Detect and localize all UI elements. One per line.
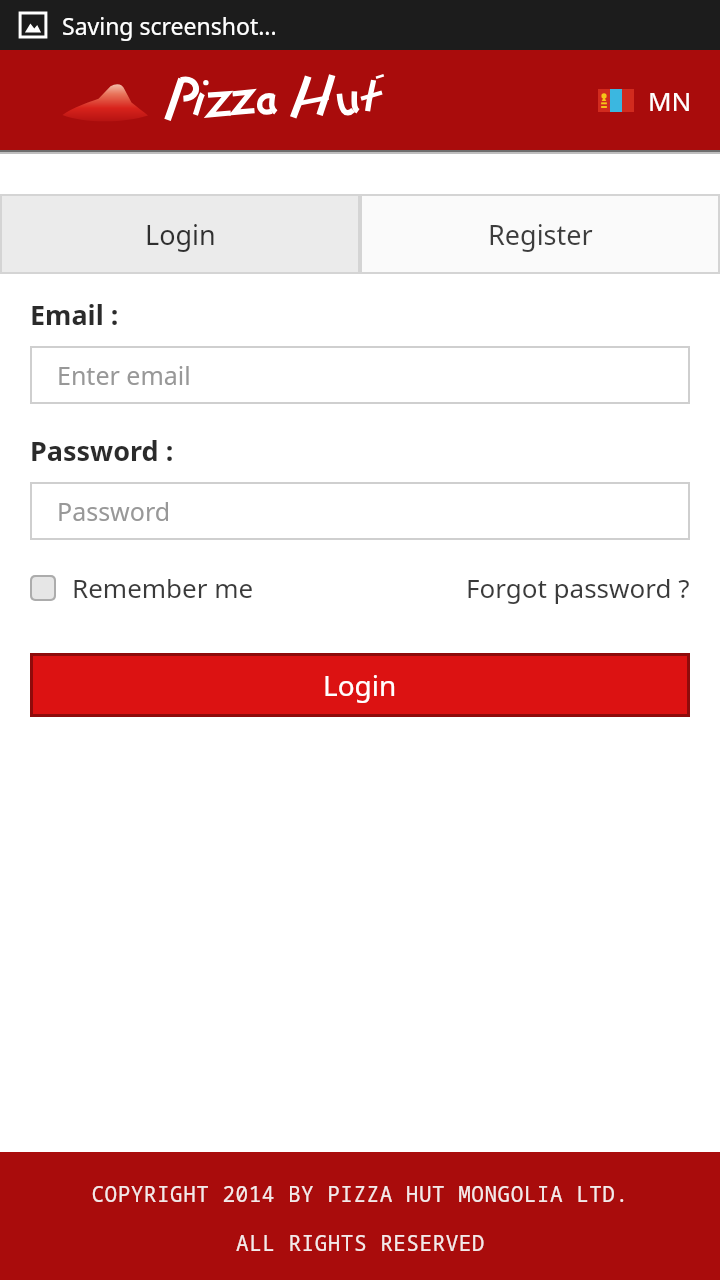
button[interactable]: Login — [33, 656, 687, 714]
button[interactable]: Login — [2, 196, 358, 272]
button[interactable]: Enter email — [32, 348, 688, 402]
staticText: Register — [488, 216, 593, 253]
staticText: MN — [648, 83, 692, 118]
staticText: Login — [145, 216, 216, 253]
staticText: Saving screenshot... — [62, 10, 277, 41]
staticText: Enter email — [57, 358, 191, 392]
staticText: Password : — [30, 432, 174, 469]
staticText: Remember me — [72, 570, 254, 605]
staticText: Forgot password ? — [466, 570, 690, 605]
button[interactable]: Register — [362, 196, 718, 272]
staticText: COPYRIGHT 2014 BY PIZZA HUT MONGOLIA LTD… — [91, 1180, 629, 1209]
button[interactable]: Password — [32, 484, 688, 538]
button[interactable]: MN — [598, 83, 692, 118]
staticText: ALL RIGHTS RESERVED — [236, 1229, 485, 1258]
button[interactable]: Remember me — [30, 570, 254, 605]
button[interactable]: Forgot password ? — [466, 570, 690, 605]
staticText: Password — [57, 494, 171, 528]
staticText: Login — [323, 666, 397, 704]
staticText: Email : — [30, 296, 119, 333]
button[interactable]: Pizza Hut home — [58, 69, 358, 131]
